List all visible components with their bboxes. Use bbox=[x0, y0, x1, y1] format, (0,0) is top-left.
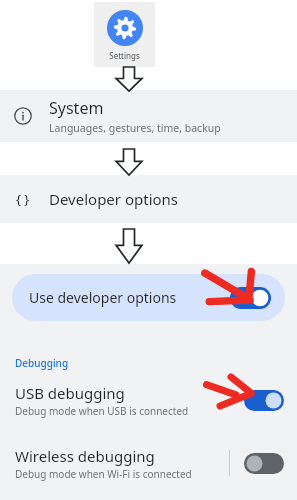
staticText: Languages, gestures, time, backup bbox=[49, 121, 221, 135]
staticText: USB debugging bbox=[15, 383, 125, 403]
staticText: { } bbox=[16, 190, 30, 208]
staticText: Wireless debugging bbox=[15, 446, 155, 466]
staticText: Settings bbox=[109, 50, 140, 61]
button[interactable]: Use developer options bbox=[12, 274, 285, 321]
staticText: Debug mode when USB is connected bbox=[15, 404, 189, 418]
staticText: System bbox=[49, 97, 104, 119]
staticText: Developer options bbox=[49, 189, 179, 209]
button[interactable]: System bbox=[0, 90, 297, 142]
staticText: Use developer options bbox=[29, 288, 177, 307]
staticText: Debugging bbox=[15, 356, 69, 370]
button[interactable]: USB debugging bbox=[0, 379, 297, 421]
button[interactable]: Settings bbox=[94, 2, 155, 67]
staticText: Debug mode when Wi-Fi is connected bbox=[15, 467, 192, 481]
button[interactable]: Wireless debugging bbox=[0, 440, 297, 486]
button[interactable]: { } bbox=[0, 175, 297, 223]
other: Wireless debugging toggle, off bbox=[244, 453, 284, 474]
